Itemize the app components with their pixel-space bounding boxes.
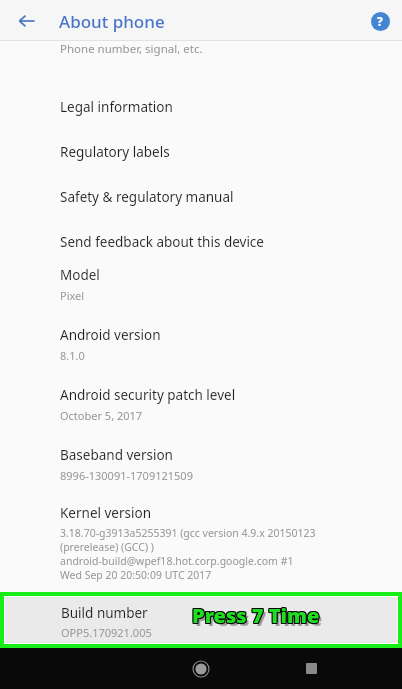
staticText: 3.18.70-g3913a5255391 (gcc version 4.9.x… (60, 526, 316, 540)
staticText: Press 7 Time (193, 602, 321, 629)
staticText: (prerelease) (GCC) ) (60, 540, 154, 554)
button[interactable]: Kernel version (0, 504, 402, 582)
button[interactable]: Back (12, 6, 42, 36)
button[interactable]: Model (0, 264, 402, 324)
staticText: Legal information (60, 98, 173, 116)
staticText: Press 7 Time (192, 602, 320, 629)
staticText: Baseband version (60, 446, 173, 464)
button[interactable]: Send feedback about this device (0, 219, 402, 264)
button[interactable]: Help (368, 9, 392, 33)
staticText: Press 7 Time (193, 603, 321, 630)
button[interactable]: Build number (5, 597, 397, 643)
staticText: Send feedback about this device (60, 233, 264, 251)
staticText: ? (377, 13, 383, 29)
button[interactable]: Home (181, 648, 221, 689)
button[interactable]: Safety & regulatory manual (0, 174, 402, 219)
staticText: Press 7 Time (191, 603, 319, 630)
staticText: OPP5.170921.005 (61, 625, 152, 640)
staticText: Press 7 Time (191, 602, 319, 629)
staticText: October 5, 2017 (60, 408, 143, 423)
staticText: Safety & regulatory manual (60, 188, 234, 206)
staticText: 8.1.0 (60, 348, 85, 363)
button[interactable]: Regulatory labels (0, 129, 402, 174)
staticText: Press 7 Time (191, 601, 319, 628)
staticText: Android security patch level (60, 386, 236, 404)
staticText: android-build@wpef18.hot.corp.google.com… (60, 554, 294, 568)
button[interactable]: Legal information (0, 84, 402, 129)
button[interactable]: Android security patch level (0, 384, 402, 444)
button[interactable]: Android version (0, 324, 402, 384)
staticText: Press 7 Time (195, 605, 323, 632)
staticText: Pixel (60, 288, 85, 303)
staticText: Kernel version (60, 504, 152, 522)
staticText: 8996-130091-1709121509 (60, 468, 193, 483)
staticText: Build number (61, 604, 148, 622)
staticText: Regulatory labels (60, 143, 170, 161)
staticText: Press 7 Time (192, 603, 320, 630)
staticText: Android version (60, 326, 161, 344)
staticText: About phone (59, 10, 165, 33)
staticText: Model (60, 266, 100, 284)
button[interactable]: Baseband version (0, 444, 402, 504)
staticText: Press 7 Time (192, 601, 320, 628)
staticText: Phone number, signal, etc. (60, 41, 203, 57)
staticText: Wed Sep 20 20:50:09 UTC 2017 (60, 568, 212, 582)
staticText: Press 7 Time (193, 601, 321, 628)
button[interactable]: Recent apps (291, 648, 331, 689)
